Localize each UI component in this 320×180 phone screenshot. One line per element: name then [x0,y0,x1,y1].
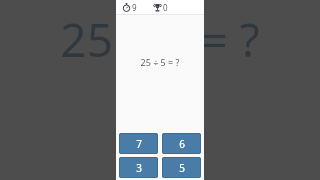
staticText: 7 [136,137,142,151]
staticText: 0 [163,2,168,13]
button[interactable]: 7 [119,133,158,154]
button[interactable]: Timer [121,2,138,13]
button[interactable]: 3 [119,157,158,178]
staticText: 25 ÷ 5 = ? [140,56,180,68]
staticText: 6 [179,137,185,151]
staticText: 9 [132,2,137,13]
button[interactable]: 6 [162,133,201,154]
staticText: 3 [136,161,142,175]
staticText: 5 [179,161,185,175]
staticText: 25 ÷ 5 = ? [60,8,260,71]
button[interactable]: 5 [162,157,201,178]
button[interactable]: Score [152,2,169,13]
